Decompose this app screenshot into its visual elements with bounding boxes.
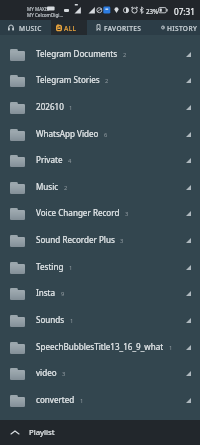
staticText: Voice Changer Record bbox=[36, 207, 120, 218]
button[interactable]: Telegram Stories bbox=[0, 67, 200, 94]
button[interactable]: Music bbox=[0, 174, 200, 201]
staticText: 23% bbox=[146, 7, 159, 15]
staticText: 3 bbox=[62, 370, 66, 378]
staticText: 1 bbox=[69, 264, 73, 272]
staticText: 1 bbox=[70, 317, 74, 325]
button[interactable]: Telegram Documents bbox=[0, 41, 200, 68]
button[interactable]: SpeechBubblesTitle13_16_9_what bbox=[0, 334, 200, 361]
button[interactable]: Private bbox=[0, 147, 200, 174]
button[interactable]: Insta bbox=[0, 280, 200, 307]
staticText: Private bbox=[36, 154, 63, 165]
staticText: Testing bbox=[36, 261, 64, 272]
staticText: MY CelcomDigi... bbox=[27, 12, 64, 18]
button[interactable]: Testing bbox=[0, 254, 200, 281]
staticText: 1 bbox=[80, 397, 84, 405]
button[interactable]: 202610 bbox=[0, 94, 200, 121]
button[interactable]: Voice Changer Record bbox=[0, 200, 200, 227]
button[interactable]: video bbox=[0, 360, 200, 387]
staticText: 6 bbox=[104, 131, 108, 139]
button[interactable]: HISTORY bbox=[145, 20, 200, 35]
staticText: WhatsApp Video bbox=[36, 128, 99, 139]
staticText: 1 bbox=[69, 104, 73, 112]
staticText: MY MAXIS bbox=[27, 6, 49, 12]
staticText: 07:31 bbox=[174, 6, 195, 17]
staticText: 4 bbox=[68, 157, 72, 165]
button[interactable]: MUSIC bbox=[0, 20, 51, 35]
staticText: MUSIC bbox=[19, 24, 42, 33]
staticText: converted bbox=[36, 394, 75, 405]
button[interactable]: WhatsApp Video bbox=[0, 121, 200, 148]
button[interactable]: Playlist bbox=[0, 420, 200, 445]
staticText: Playlist bbox=[29, 427, 55, 438]
staticText: Music bbox=[36, 181, 59, 192]
staticText: Telegram Documents bbox=[36, 48, 118, 59]
staticText: 202610 bbox=[36, 101, 64, 112]
staticText: Sounds bbox=[36, 314, 65, 325]
button[interactable]: Sounds bbox=[0, 307, 200, 334]
button[interactable]: converted bbox=[0, 387, 200, 414]
button[interactable]: Sound Recorder Plus bbox=[0, 227, 200, 254]
button[interactable]: ALL bbox=[51, 20, 87, 35]
staticText: 9 bbox=[61, 290, 65, 298]
staticText: 3 bbox=[125, 210, 129, 218]
staticText: 2 bbox=[123, 51, 127, 59]
staticText: video bbox=[36, 367, 57, 378]
button[interactable]: FAVORITES bbox=[86, 20, 145, 35]
staticText: 1 bbox=[169, 344, 173, 352]
staticText: Sound Recorder Plus bbox=[36, 234, 115, 245]
staticText: 2 bbox=[64, 184, 68, 192]
staticText: Telegram Stories bbox=[36, 74, 100, 85]
staticText: 3 bbox=[120, 237, 124, 245]
staticText: SpeechBubblesTitle13_16_9_what bbox=[36, 341, 164, 352]
staticText: FAVORITES bbox=[104, 24, 142, 33]
staticText: ALL bbox=[64, 24, 77, 33]
staticText: 2 bbox=[105, 77, 109, 85]
staticText: HISTORY bbox=[167, 24, 198, 33]
staticText: Insta bbox=[36, 287, 56, 298]
